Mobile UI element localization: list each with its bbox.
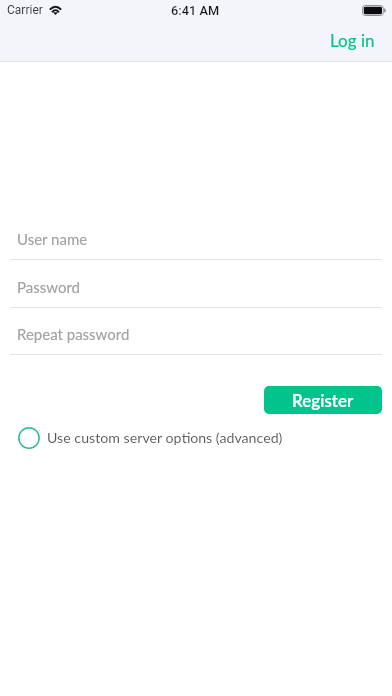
button[interactable]: Toggle off — [0, 426, 392, 449]
staticText: Log in — [330, 30, 375, 50]
staticText: User name — [17, 230, 88, 248]
staticText: Carrier — [7, 3, 43, 17]
button[interactable]: Log in — [310, 26, 392, 54]
staticText: Repeat password — [17, 325, 130, 343]
button[interactable]: Register — [264, 386, 382, 414]
staticText: Use custom server options (advanced) — [47, 429, 283, 446]
other: Battery full — [362, 5, 386, 16]
staticText: 6:41 AM — [171, 3, 220, 18]
button[interactable]: Password — [0, 271, 392, 303]
staticText: Password — [17, 278, 80, 296]
button[interactable]: Repeat password — [0, 318, 392, 350]
other: Toggle off — [18, 427, 40, 449]
staticText: Register — [292, 390, 354, 410]
other: Wi-Fi signal — [49, 6, 62, 15]
button[interactable]: User name — [0, 223, 392, 255]
